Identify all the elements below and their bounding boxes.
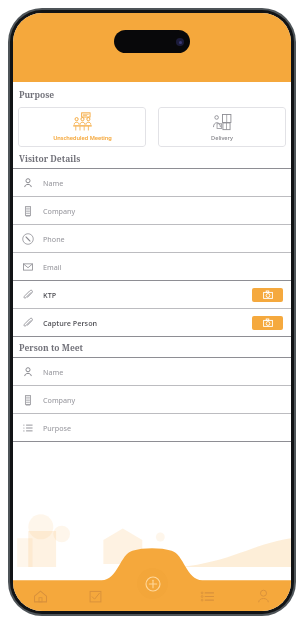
staticText: Company bbox=[43, 395, 76, 405]
staticText: Visitor Details bbox=[19, 153, 81, 165]
button[interactable]: Name bbox=[13, 169, 291, 196]
staticText: Phone bbox=[43, 234, 65, 244]
staticText: Email bbox=[43, 262, 62, 272]
staticText: Unscheduled Meeting bbox=[53, 134, 112, 142]
staticText: KTP bbox=[43, 290, 57, 300]
button[interactable]: Capture photo for KTP bbox=[252, 288, 283, 302]
staticText: Delivery bbox=[211, 134, 233, 142]
button[interactable]: Add visitor bbox=[137, 568, 168, 599]
button[interactable]: Company bbox=[13, 197, 291, 224]
staticText: Purpose bbox=[19, 89, 55, 101]
button[interactable]: Name bbox=[13, 358, 291, 385]
button[interactable]: Profile bbox=[235, 581, 291, 611]
button[interactable]: Phone bbox=[13, 225, 291, 252]
button[interactable]: Capture Person bbox=[13, 309, 291, 336]
button[interactable]: KTP bbox=[13, 281, 291, 308]
button[interactable]: Unscheduled Meeting bbox=[18, 107, 146, 147]
button[interactable]: Activity bbox=[68, 581, 123, 611]
button[interactable]: Company bbox=[13, 386, 291, 413]
staticText: Name bbox=[43, 367, 64, 377]
button[interactable]: Email bbox=[13, 253, 291, 280]
staticText: Company bbox=[43, 206, 76, 216]
button[interactable]: Purpose bbox=[13, 414, 291, 441]
button[interactable]: Home bbox=[13, 581, 68, 611]
staticText: Capture Person bbox=[43, 318, 98, 328]
staticText: Person to Meet bbox=[19, 342, 84, 354]
button[interactable]: List bbox=[179, 581, 235, 611]
staticText: Purpose bbox=[43, 423, 72, 433]
button[interactable]: Capture photo for Capture Person bbox=[252, 316, 283, 330]
button[interactable]: Delivery bbox=[158, 107, 286, 147]
staticText: Name bbox=[43, 178, 64, 188]
